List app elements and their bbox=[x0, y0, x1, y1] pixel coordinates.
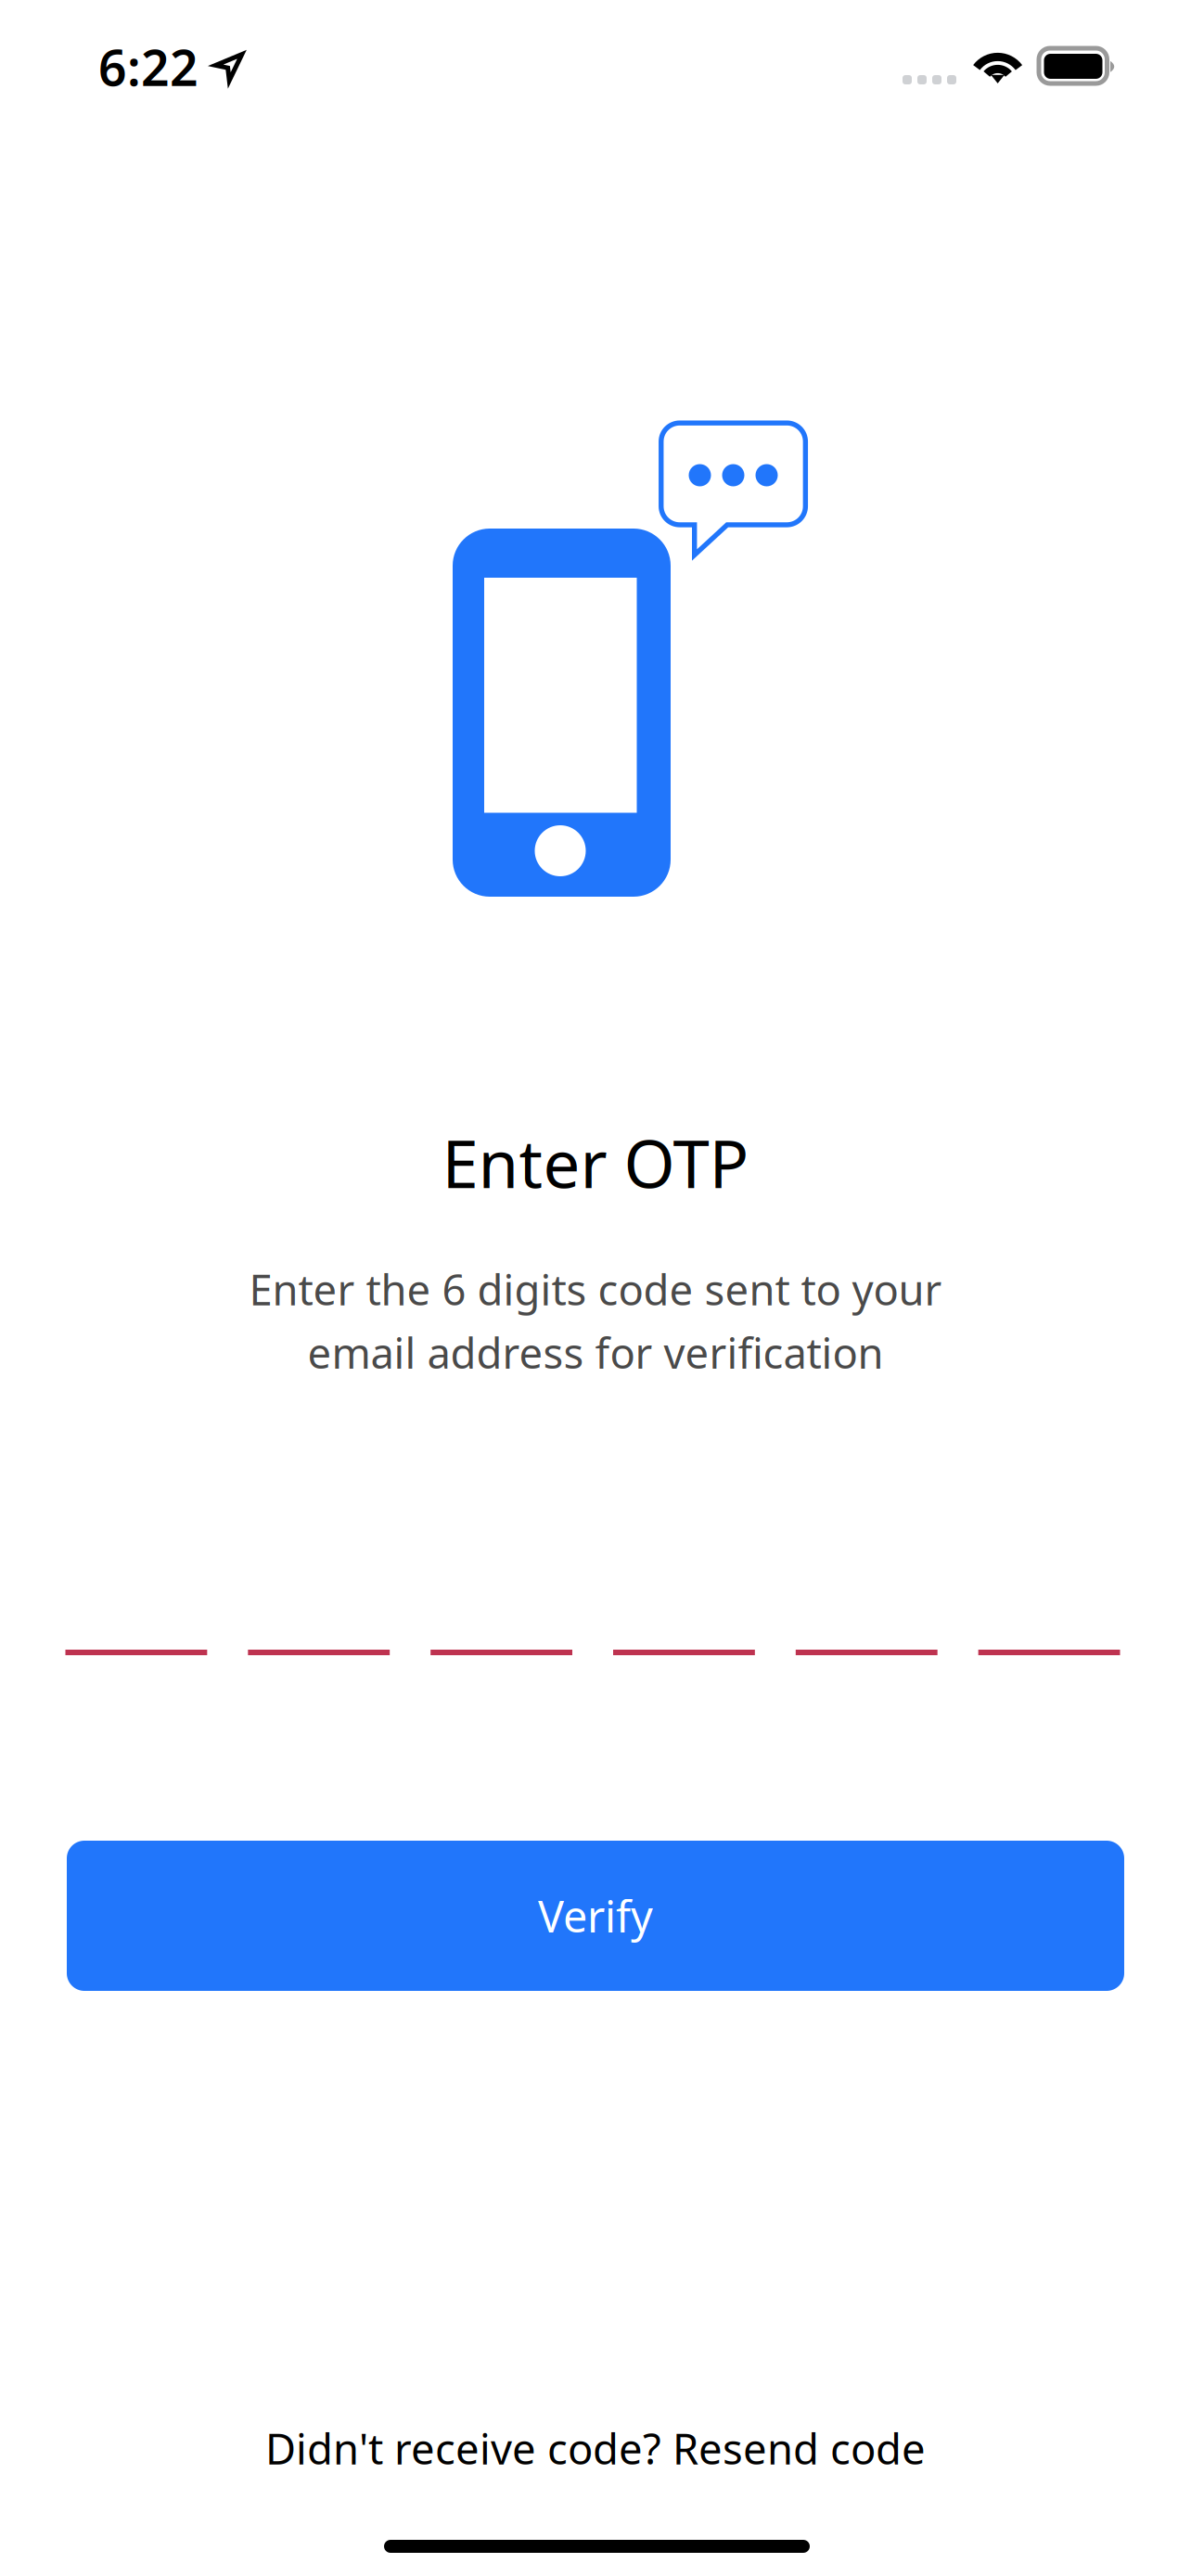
staticText: 6:22 bbox=[98, 34, 198, 100]
button[interactable]: Digit 4 bbox=[613, 1566, 755, 1655]
button[interactable]: Digit 6 bbox=[978, 1566, 1120, 1655]
button[interactable]: Verify bbox=[67, 1841, 1124, 1991]
staticText: Enter OTP bbox=[442, 1119, 749, 1206]
staticText: Enter the 6 digits code sent to your bbox=[249, 1261, 942, 1317]
staticText: Didn't receive code? Resend code bbox=[265, 2420, 926, 2476]
button[interactable]: Digit 1 bbox=[65, 1566, 207, 1655]
button[interactable]: Digit 3 bbox=[431, 1566, 572, 1655]
staticText: Verify bbox=[538, 1887, 653, 1945]
button[interactable]: Didn't receive code? Resend code bbox=[265, 2420, 926, 2476]
staticText: email address for verification bbox=[307, 1324, 884, 1380]
button[interactable]: Digit 2 bbox=[248, 1566, 390, 1655]
button[interactable]: Digit 5 bbox=[796, 1566, 937, 1655]
